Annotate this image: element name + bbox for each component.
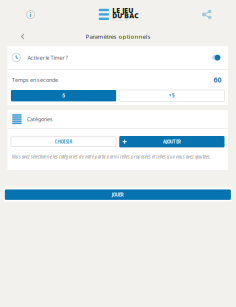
button[interactable]: -5 <box>11 90 116 101</box>
button[interactable]: CHOISIR <box>11 137 116 147</box>
staticText: Paramètres optionnels <box>85 32 150 41</box>
button[interactable]: Informations <box>20 4 40 24</box>
button[interactable]: Retour <box>13 29 32 43</box>
staticText: +5 <box>169 93 175 99</box>
button[interactable]: JOUER <box>4 187 232 202</box>
staticText: CHOISIR <box>54 139 72 145</box>
staticText: Activer le Timer ? <box>27 54 67 61</box>
button[interactable]: Activer le Timer <box>210 52 222 63</box>
staticText: Vous avez sélectionné les catégories de … <box>12 154 211 160</box>
staticText: JOUER <box>112 192 124 198</box>
staticText: DU BAC <box>112 11 138 20</box>
button[interactable]: Partager <box>196 4 217 25</box>
staticText: AJOUTER <box>163 139 181 145</box>
staticText: 60 <box>213 75 221 85</box>
button[interactable]: AJOUTER <box>119 136 224 147</box>
staticText: LE JEU <box>112 6 133 15</box>
button[interactable]: +5 <box>119 90 224 101</box>
staticText: -5 <box>61 93 65 99</box>
staticText: Catégories <box>27 115 53 123</box>
staticText: LE JEU DU BAC <box>112 18 128 21</box>
staticText: Temps en seconde <box>12 76 58 84</box>
